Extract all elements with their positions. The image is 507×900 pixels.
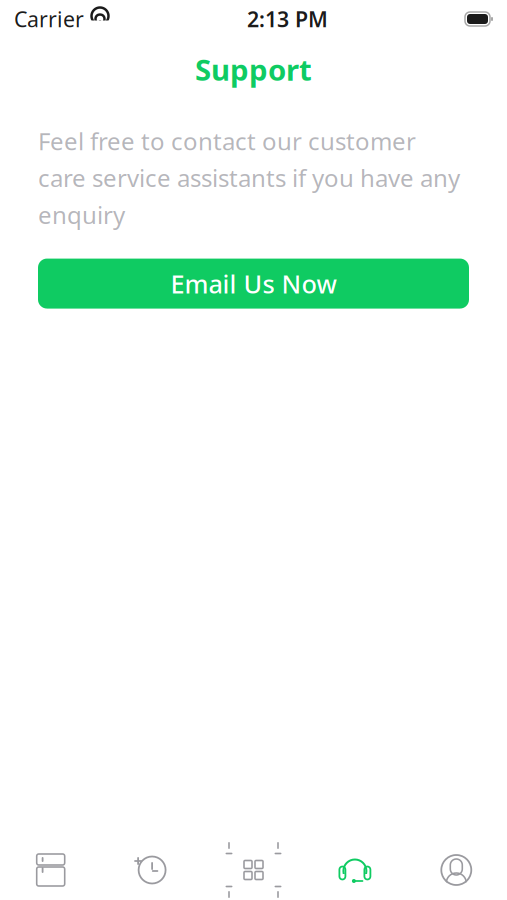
button[interactable]: Profile bbox=[406, 843, 507, 897]
staticText: Feel free to contact our customer care s… bbox=[38, 125, 460, 231]
staticText: Carrier bbox=[14, 5, 84, 33]
button[interactable]: Support bbox=[304, 843, 406, 897]
staticText: Support bbox=[195, 50, 312, 89]
button[interactable]: Email Us Now bbox=[38, 259, 469, 309]
button[interactable]: Fridge bbox=[0, 843, 101, 897]
staticText: Email Us Now bbox=[170, 267, 336, 300]
button[interactable]: History bbox=[101, 843, 203, 897]
button[interactable]: Scan bbox=[203, 843, 304, 897]
staticText: 2:13 PM bbox=[247, 5, 328, 33]
